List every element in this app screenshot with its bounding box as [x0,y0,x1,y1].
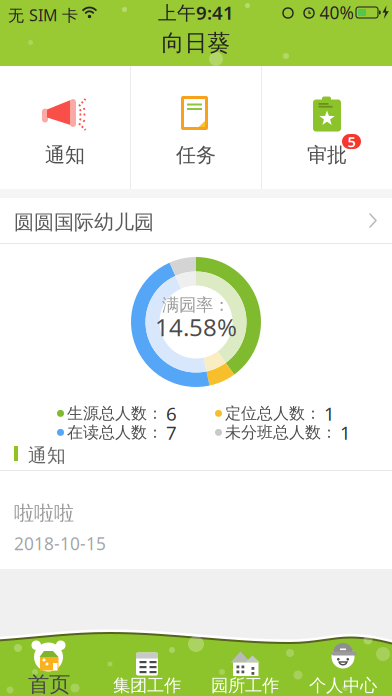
staticText: 未分班总人数： [225,423,337,442]
staticText: 上午9:41 [158,0,234,25]
staticText: 6 [166,401,177,426]
staticText: 5 [347,132,355,151]
staticText: 14.58% [155,311,237,343]
staticText: 1 [340,420,351,445]
staticText: 定位总人数： [225,404,321,423]
staticText: 向日葵 [161,29,230,57]
staticText: 2018-10-15 [14,532,106,555]
staticText: 7 [166,420,177,445]
staticText: 首页 [28,671,70,696]
staticText: 审批 [307,143,347,167]
staticText: 无 SIM 卡 [8,4,78,26]
staticText: 任务 [176,143,216,167]
staticText: 园所工作 [211,675,279,696]
staticText: 个人中心 [309,675,377,696]
staticText: 1 [324,401,335,426]
staticText: 满园率： [162,294,230,316]
staticText: 通知 [45,143,85,167]
staticText: 40% [319,1,353,24]
staticText: 在读总人数： [67,423,163,442]
staticText: 圆圆国际幼儿园 [14,210,154,235]
staticText: 啦啦啦 [14,501,74,526]
staticText: 通知 [28,444,66,467]
staticText: 生源总人数： [67,404,163,423]
staticText: 集团工作 [113,675,181,696]
